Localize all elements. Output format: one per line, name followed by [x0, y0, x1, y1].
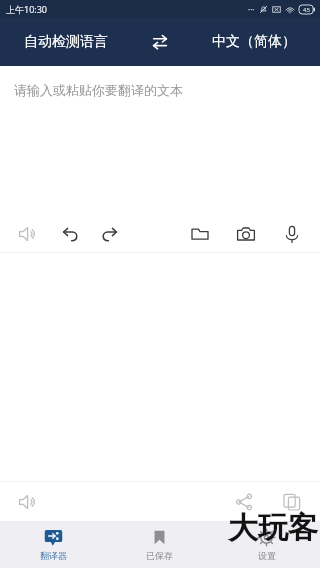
staticText: 自动检测语言 — [24, 33, 108, 51]
staticText: 设置 — [258, 550, 276, 561]
staticText: 大玩客 — [228, 509, 318, 547]
button[interactable]: Speak — [14, 220, 42, 248]
button[interactable]: Swap languages — [132, 18, 188, 66]
button[interactable]: Undo — [56, 220, 84, 248]
button[interactable]: 已保存 — [106, 521, 213, 568]
button[interactable]: Copy — [278, 488, 306, 516]
button[interactable]: Speak translation — [14, 488, 42, 516]
staticText: 中文（简体） — [212, 33, 296, 51]
button[interactable]: 自动检测语言 — [0, 18, 132, 66]
staticText: 上午10:30 — [6, 3, 48, 15]
button[interactable]: Open file — [186, 220, 214, 248]
staticText: 请输入或粘贴你要翻译的文本 — [14, 82, 183, 98]
staticText: 已保存 — [146, 550, 173, 561]
button[interactable]: 中文（简体） — [188, 18, 320, 66]
staticText: 45 — [303, 6, 310, 14]
staticText: 翻译器 — [40, 550, 67, 561]
button[interactable]: 请输入或粘贴你要翻译的文本 — [0, 66, 320, 216]
button[interactable]: Voice input — [278, 220, 306, 248]
staticText: ··· — [248, 4, 255, 15]
button[interactable]: 设置 — [213, 521, 320, 568]
button[interactable]: Share — [230, 488, 258, 516]
button[interactable]: Redo — [96, 220, 124, 248]
button[interactable]: 翻译器 — [0, 521, 106, 568]
button[interactable]: Camera — [232, 220, 260, 248]
